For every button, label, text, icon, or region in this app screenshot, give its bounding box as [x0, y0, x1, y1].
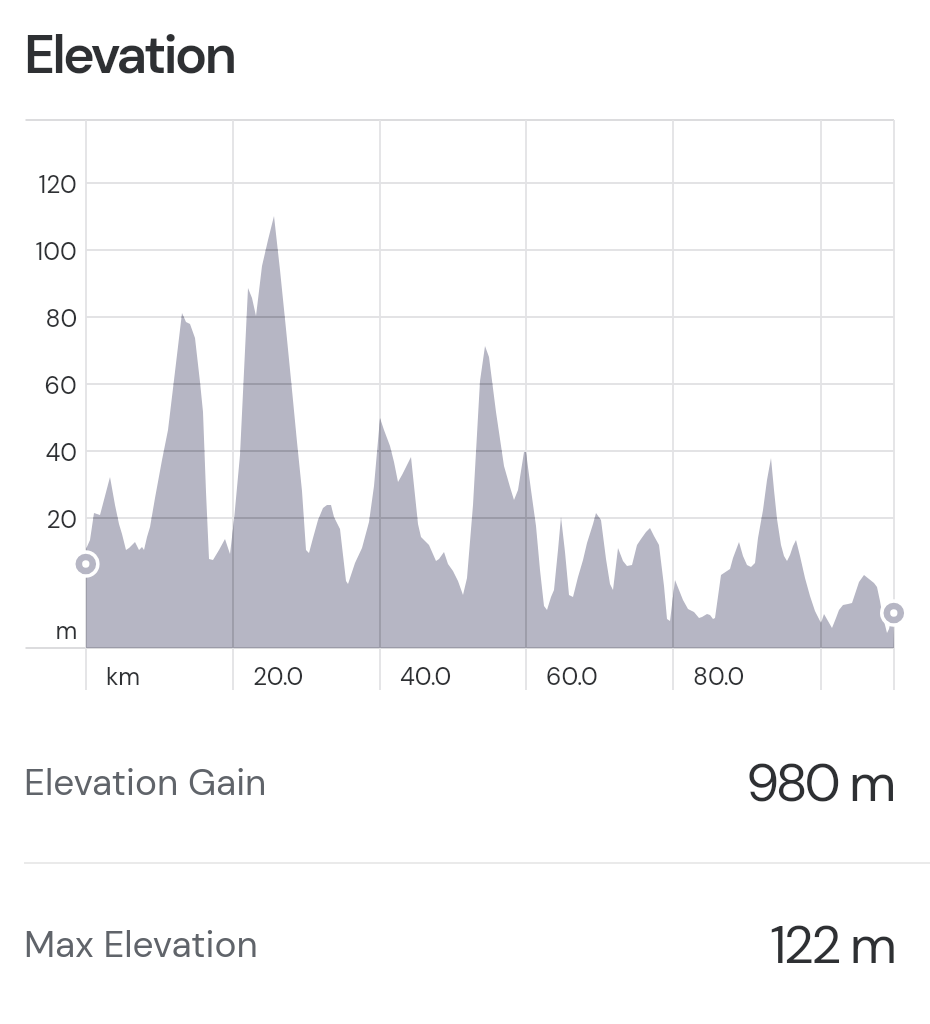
staticText: Elevation	[24, 19, 235, 89]
button[interactable]: Max Elevation	[0, 864, 930, 1024]
staticText: 122 m	[770, 910, 894, 979]
staticText: 980 m	[746, 748, 894, 817]
staticText: Elevation Gain	[24, 758, 267, 806]
button[interactable]: Elevation	[24, 19, 235, 89]
button[interactable]: Elevation Gain	[0, 702, 930, 862]
staticText: Max Elevation	[24, 920, 258, 968]
other: Elevation profile chart	[0, 0, 930, 1024]
